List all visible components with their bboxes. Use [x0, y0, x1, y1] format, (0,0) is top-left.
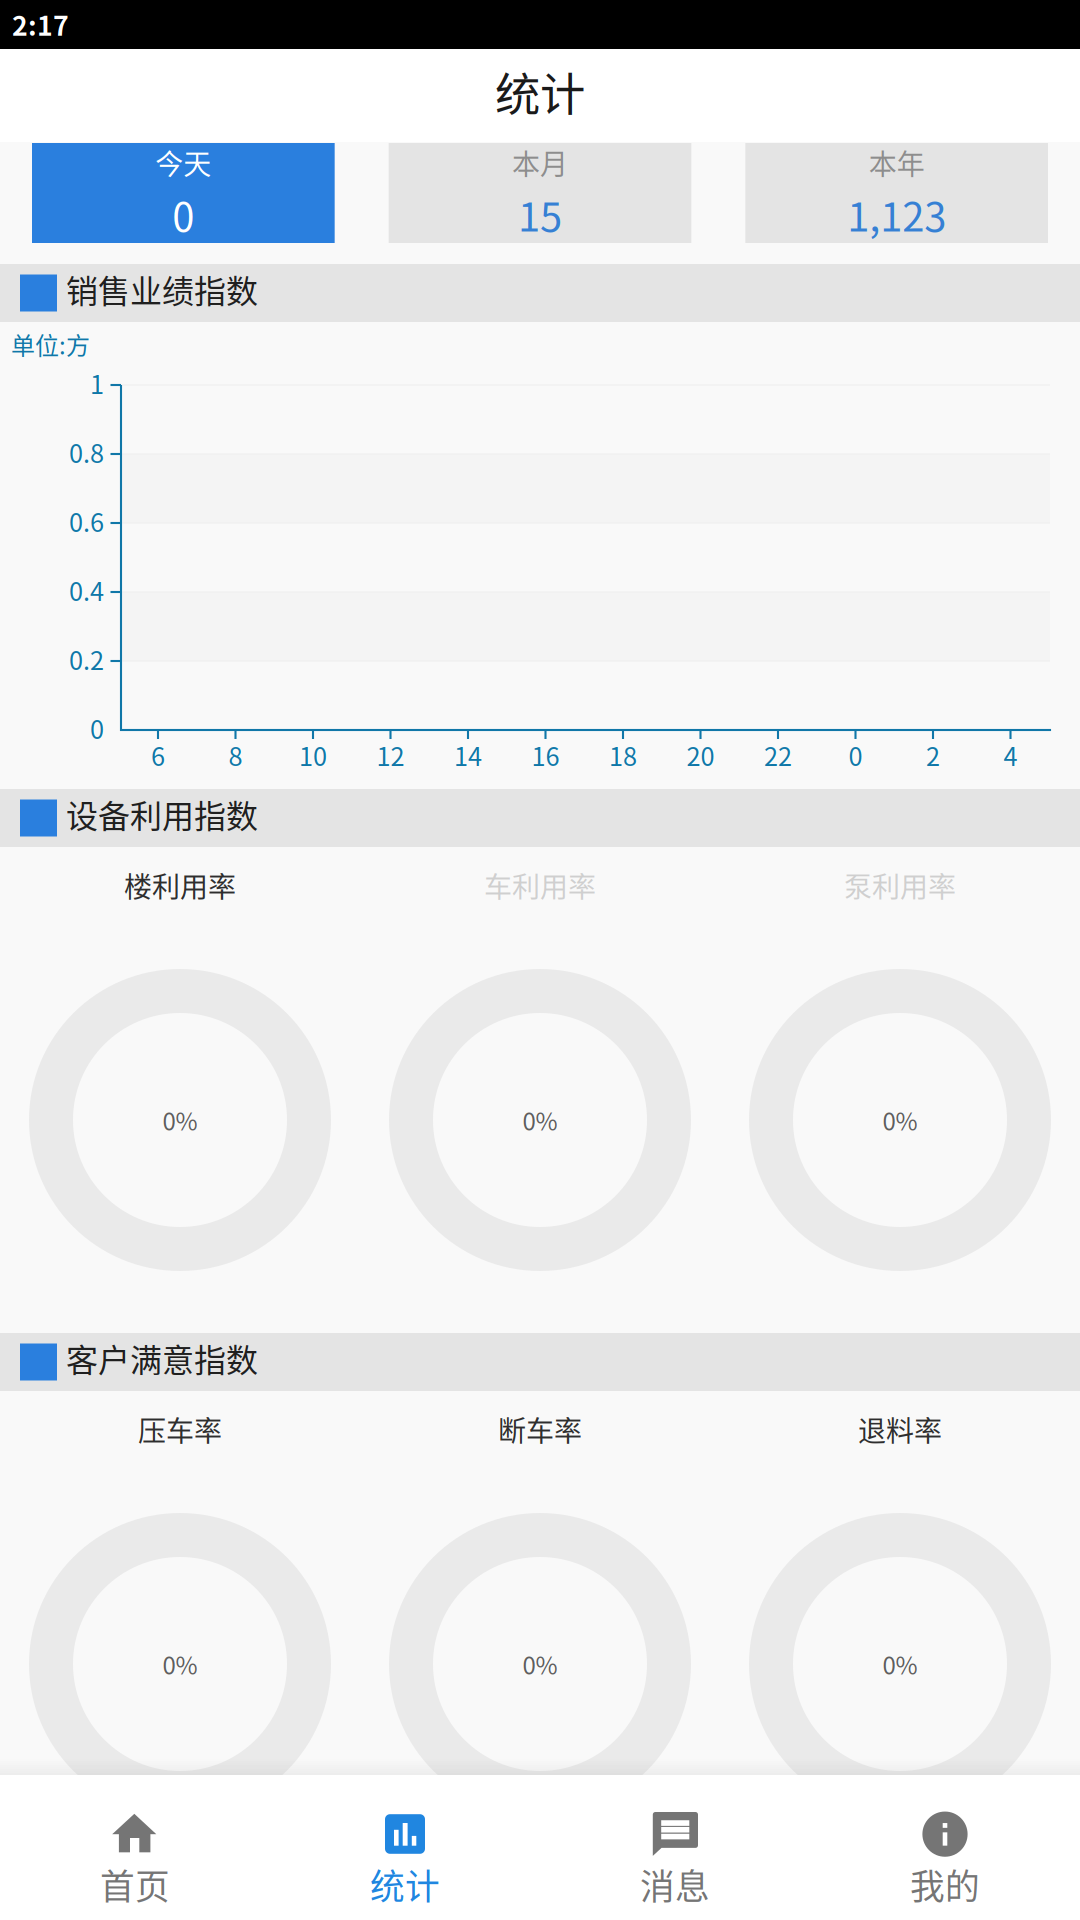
staticText: 压车率 [138, 1409, 222, 1449]
staticText: 12 [376, 737, 404, 773]
staticText: 22 [764, 737, 792, 773]
staticText: 我的 [910, 1859, 980, 1910]
button[interactable]: 消息 [540, 1775, 810, 1920]
staticText: 0 [848, 737, 862, 773]
staticText: 泵利用率 [844, 865, 956, 905]
staticText: 统计 [370, 1859, 440, 1910]
staticText: 首页 [100, 1859, 170, 1910]
button[interactable]: 本年 [745, 143, 1048, 243]
staticText: 1 [90, 365, 104, 401]
staticText: 10 [299, 737, 327, 773]
staticText: 消息 [640, 1859, 710, 1910]
staticText: 18 [609, 737, 637, 773]
staticText: 本月 [512, 142, 568, 183]
staticText: 统计 [495, 59, 585, 124]
staticText: 1,123 [847, 185, 946, 243]
staticText: 0.6 [69, 503, 104, 539]
staticText: 16 [531, 737, 559, 773]
staticText: 14 [454, 737, 482, 773]
staticText: 0.2 [69, 641, 104, 677]
staticText: 0% [882, 1647, 917, 1681]
staticText: 单位:方 [11, 327, 90, 361]
staticText: 退料率 [858, 1409, 942, 1449]
staticText: 0% [162, 1647, 197, 1681]
staticText: 断车率 [498, 1409, 582, 1449]
staticText: 0.8 [69, 434, 104, 470]
staticText: 本年 [869, 142, 925, 183]
button[interactable]: 本月 [389, 143, 691, 243]
staticText: 今天 [155, 142, 211, 183]
staticText: 0 [172, 185, 194, 243]
staticText: 0.4 [69, 572, 104, 608]
staticText: 15 [518, 185, 562, 243]
staticText: 8 [228, 737, 242, 773]
staticText: 0% [882, 1103, 917, 1137]
staticText: 销售业绩指数 [66, 266, 258, 312]
button[interactable]: 统计 [270, 1775, 540, 1920]
staticText: 0% [522, 1647, 557, 1681]
staticText: 车利用率 [484, 865, 596, 905]
staticText: 4 [1003, 737, 1017, 773]
staticText: 0 [90, 710, 104, 746]
staticText: 客户满意指数 [66, 1335, 258, 1381]
staticText: 设备利用指数 [66, 791, 258, 837]
staticText: 0% [522, 1103, 557, 1137]
staticText: 0% [162, 1103, 197, 1137]
button[interactable]: 我的 [810, 1775, 1080, 1920]
staticText: 6 [151, 737, 165, 773]
staticText: 2 [926, 737, 940, 773]
staticText: 2:17 [12, 5, 69, 43]
button[interactable]: 今天 [32, 143, 335, 243]
staticText: 20 [686, 737, 714, 773]
staticText: 楼利用率 [124, 865, 236, 905]
button[interactable]: 首页 [0, 1775, 270, 1920]
